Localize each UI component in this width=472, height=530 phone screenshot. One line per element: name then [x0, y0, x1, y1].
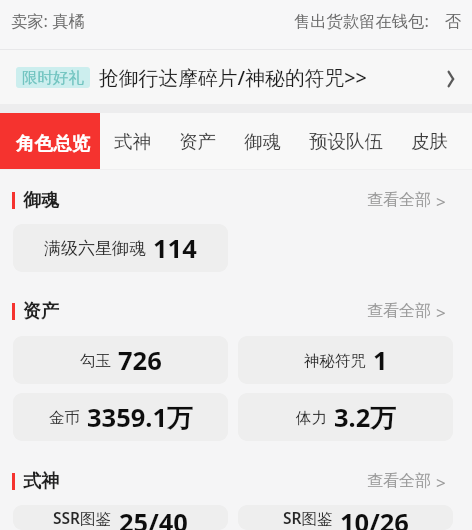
button[interactable]: 勾玉 [13, 336, 228, 384]
staticText: 查看全部 [367, 301, 431, 321]
staticText: 式神 [114, 130, 151, 153]
staticText: 限时好礼 [22, 68, 84, 88]
staticText: SR图鉴 [283, 507, 333, 528]
staticText: 勾玉 [80, 351, 111, 371]
staticText: > [436, 301, 446, 321]
button[interactable]: 神秘符咒 [238, 336, 453, 384]
staticText: 10/26 [340, 505, 409, 530]
staticText: 3359.1万 [87, 400, 193, 435]
staticText: 抢御行达摩碎片/神秘的符咒>> [99, 64, 367, 91]
button[interactable]: 金币 [13, 393, 228, 441]
staticText: > [436, 190, 446, 210]
staticText: 金币 [49, 408, 80, 428]
button[interactable]: 皮肤 [397, 113, 462, 169]
staticText: 满级六星御魂 [44, 238, 146, 259]
button[interactable]: 限时好礼 [0, 50, 472, 104]
staticText: 售出货款留在钱包: 否 [294, 10, 462, 32]
button[interactable]: SR图鉴 [238, 505, 453, 530]
button[interactable]: 满级六星御魂 [13, 224, 228, 272]
staticText: 114 [153, 231, 197, 266]
staticText: 卖家: 真橘 [11, 10, 85, 32]
button[interactable]: 资产 [165, 113, 230, 169]
other: More [441, 64, 465, 91]
staticText: 预设队伍 [309, 130, 383, 153]
button[interactable]: SSR图鉴 [13, 505, 228, 530]
staticText: 御魂 [244, 130, 281, 153]
staticText: 查看全部 [367, 190, 431, 210]
staticText: 神秘符咒 [304, 351, 366, 371]
staticText: 资产 [23, 300, 59, 323]
staticText: 御魂 [23, 189, 59, 212]
button[interactable]: 角色总览 [0, 113, 100, 169]
staticText: 体力 [296, 408, 327, 428]
staticText: 3.2万 [334, 400, 396, 435]
button[interactable]: 式神 [100, 113, 165, 169]
staticText: 查看全部 [367, 471, 431, 491]
staticText: 1 [373, 343, 388, 378]
button[interactable]: 查看全部 [351, 296, 472, 326]
staticText: 式神 [23, 470, 59, 493]
button[interactable]: 体力 [238, 393, 453, 441]
staticText: > [436, 471, 446, 491]
button[interactable]: 御魂 [230, 113, 295, 169]
staticText: SSR图鉴 [53, 507, 112, 528]
staticText: 726 [118, 343, 162, 378]
staticText: 25/40 [119, 505, 188, 530]
button[interactable]: 预设队伍 [295, 113, 397, 169]
staticText: 资产 [179, 130, 216, 153]
button[interactable]: 查看全部 [351, 466, 472, 496]
staticText: 角色总览 [16, 132, 90, 155]
button[interactable]: 查看全部 [351, 185, 472, 215]
staticText: 皮肤 [411, 130, 448, 153]
